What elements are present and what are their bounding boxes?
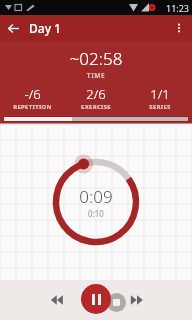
button[interactable]: -/6 — [0, 85, 64, 111]
staticText: REPETITION — [13, 103, 52, 111]
staticText: Day 1 — [29, 20, 61, 36]
button[interactable]: Previous — [44, 287, 70, 313]
staticText: 11:23 — [166, 2, 190, 14]
button[interactable]: More options — [166, 15, 192, 41]
staticText: 0:09 — [79, 185, 113, 208]
staticText: 0:10 — [88, 208, 104, 219]
staticText: EXERCISE — [81, 103, 111, 111]
button[interactable]: Pause — [81, 284, 111, 314]
staticText: ~02:58 — [0, 47, 192, 70]
button[interactable]: Back — [0, 15, 26, 41]
button[interactable]: Stop — [107, 293, 126, 312]
staticText: TIME — [0, 71, 192, 80]
staticText: SERIES — [149, 103, 171, 111]
button[interactable]: 1/1 — [128, 85, 192, 111]
button[interactable]: 0:09 — [48, 154, 144, 250]
staticText: -/6 — [24, 85, 41, 103]
staticText: 2/6 — [86, 85, 106, 103]
staticText: 1/1 — [150, 85, 170, 103]
button[interactable]: Next — [124, 287, 150, 313]
button[interactable]: 2/6 — [64, 85, 128, 111]
